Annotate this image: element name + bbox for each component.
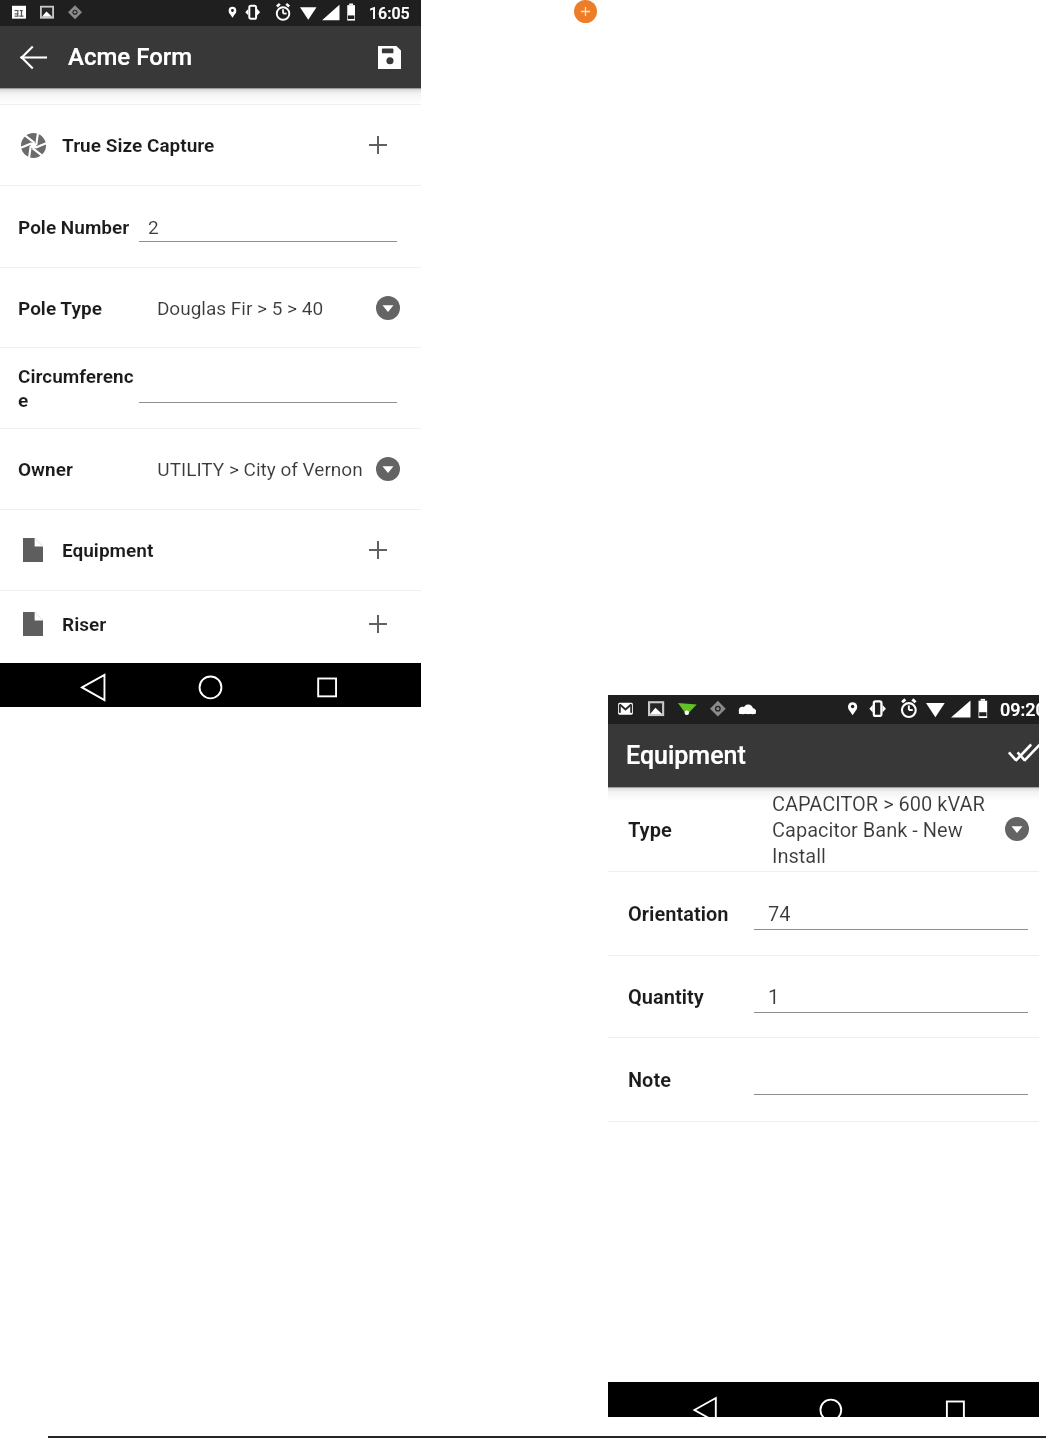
button[interactable]: Pole Type <box>0 268 421 347</box>
staticText: Orientation <box>628 902 758 925</box>
staticText: 1 <box>768 985 1008 1008</box>
staticText: Note <box>628 1068 758 1091</box>
staticText: Type <box>628 818 748 841</box>
staticText: Pole Number <box>18 216 142 238</box>
button[interactable]: Done <box>1006 738 1042 774</box>
button[interactable]: Pole Number <box>0 186 421 267</box>
button[interactable]: True Size Capture <box>0 105 421 185</box>
button[interactable]: Type <box>608 787 1039 871</box>
button[interactable]: Note <box>608 1038 1039 1121</box>
staticText: Equipment <box>62 539 154 561</box>
staticText: UTILITY > City of Vernon <box>145 458 375 480</box>
button[interactable]: Orientation <box>608 872 1039 955</box>
staticText: Pole Type <box>18 297 142 319</box>
button[interactable]: Add True Size Capture <box>360 127 396 163</box>
button[interactable]: Owner <box>0 429 421 509</box>
button[interactable]: Add Equipment <box>360 532 396 568</box>
staticText: CAPACITOR > 600 kVAR Capacitor Bank - Ne… <box>772 792 990 867</box>
staticText: Quantity <box>628 985 758 1008</box>
staticText: True Size Capture <box>62 134 215 156</box>
button[interactable]: Riser <box>0 591 421 663</box>
staticText: 2 <box>148 216 388 238</box>
staticText: Equipment <box>626 741 746 770</box>
staticText: 74 <box>768 902 1008 925</box>
staticText: Douglas Fir > 5 > 40 <box>125 297 355 319</box>
button[interactable]: Back <box>10 34 56 80</box>
staticText: Owner <box>18 458 142 480</box>
staticText: 09:20 <box>1000 699 1046 720</box>
staticText: Acme Form <box>68 43 193 71</box>
button[interactable]: Save <box>366 34 412 80</box>
button[interactable]: Add <box>574 0 597 23</box>
button[interactable]: Circumference <box>0 348 421 428</box>
button[interactable]: Equipment <box>0 510 421 590</box>
button[interactable]: Quantity <box>608 956 1039 1037</box>
staticText: 16:05 <box>369 4 410 23</box>
staticText: Circumference <box>18 365 134 412</box>
staticText: Riser <box>62 613 107 635</box>
button[interactable]: Add Riser <box>360 606 396 642</box>
